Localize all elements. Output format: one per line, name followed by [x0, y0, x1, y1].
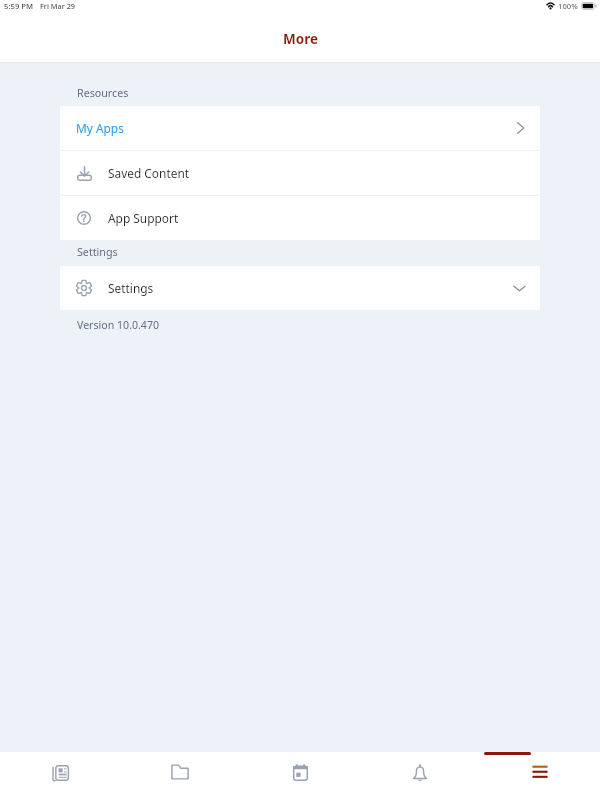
staticText: Fri Mar 29	[40, 1, 76, 11]
staticText: Resources	[77, 86, 129, 101]
staticText: Settings	[77, 245, 118, 260]
button[interactable]: Saved Content	[60, 151, 540, 195]
button[interactable]: News	[0, 752, 120, 800]
button[interactable]: Settings	[60, 266, 540, 310]
staticText: 5:59 PM	[4, 1, 34, 11]
staticText: My Apps	[76, 120, 124, 136]
staticText: App Support	[108, 210, 179, 226]
button[interactable]: Files	[120, 752, 240, 800]
button[interactable]: Alerts	[360, 752, 480, 800]
button[interactable]: My Apps	[60, 106, 540, 150]
button[interactable]: Calendar	[240, 752, 360, 800]
staticText: 100%	[558, 1, 578, 11]
staticText: More	[283, 30, 318, 48]
button[interactable]: More menu	[480, 752, 600, 800]
staticText: Version 10.0.470	[77, 318, 160, 332]
staticText: Settings	[108, 280, 154, 296]
button[interactable]: App Support	[60, 196, 540, 240]
staticText: Saved Content	[108, 165, 190, 181]
